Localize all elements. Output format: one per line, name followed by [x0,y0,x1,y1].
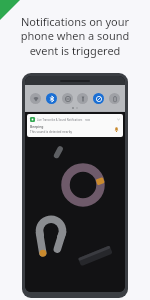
staticText: Notifications on your phone when a sound… [8,14,142,59]
button[interactable]: Battery saver [109,93,120,104]
button[interactable]: Bluetooth [46,93,57,104]
button[interactable]: Live Transcribe & Sound Notifications [27,114,123,137]
staticText: now [85,118,91,122]
button[interactable]: Do not disturb [62,93,73,104]
staticText: Live Transcribe & Sound Notifications [37,118,83,122]
button[interactable]: Wi-Fi [30,93,41,104]
button[interactable]: Sound notifications [93,93,104,104]
button[interactable]: Flashlight [77,93,88,104]
other: Badge [0,0,20,20]
staticText: This sound is detected nearby [30,130,73,134]
staticText: Beeping [30,124,44,129]
